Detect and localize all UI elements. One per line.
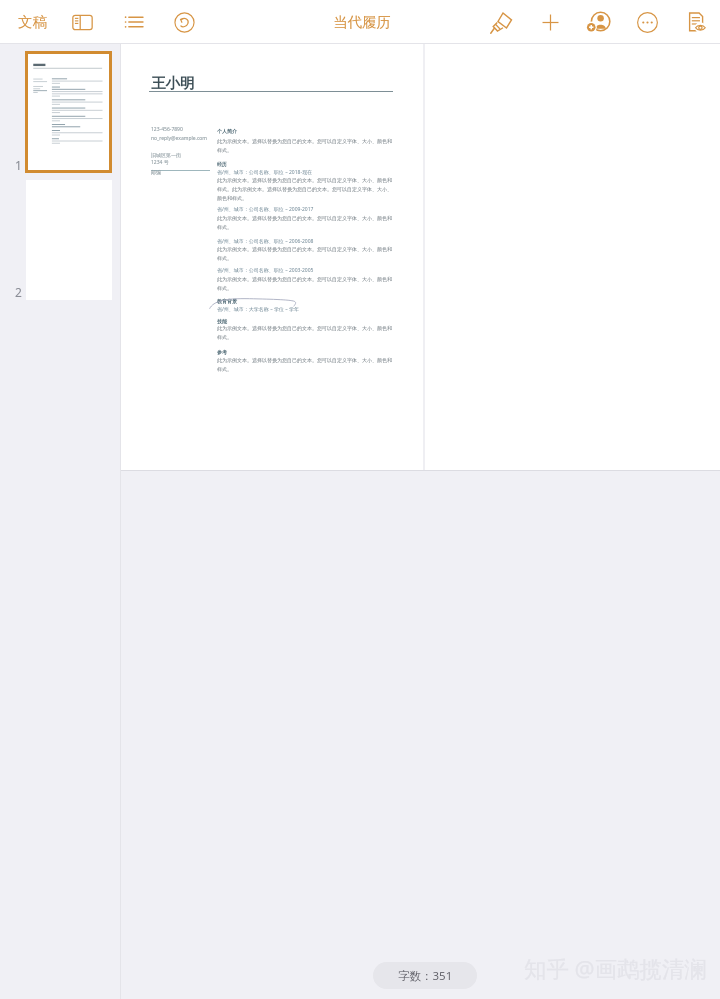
staticText: 1234 号 — [151, 159, 169, 166]
staticText: 字数：351 — [398, 968, 453, 984]
button[interactable]: More — [632, 7, 662, 37]
staticText: 此为示例文本。选择以替换为您自己的文本。您可以自定义字体、大小、颜色和样式。 — [217, 246, 394, 261]
staticText: 王小明 — [151, 74, 195, 92]
staticText: 经历 — [217, 161, 227, 167]
staticText: 此为示例文本。选择以替换为您自己的文本。您可以自定义字体、大小、颜色和样式。 — [217, 276, 394, 291]
staticText: 省/州、城市：公司名称、职位 – 2018-现在 — [217, 169, 313, 176]
button[interactable]: Table of contents — [119, 7, 149, 37]
staticText: 1 — [15, 157, 22, 173]
button[interactable]: 王小明 — [121, 44, 420, 470]
staticText: 当代履历 — [333, 13, 391, 31]
button[interactable]: 文稿 — [12, 6, 53, 38]
button[interactable]: Undo — [169, 7, 199, 37]
staticText: 教育背景 — [217, 298, 237, 304]
button[interactable]: Insert — [535, 7, 565, 37]
button[interactable]: Sidebar — [67, 7, 97, 37]
staticText: 文稿 — [18, 13, 47, 31]
staticText: 个人简介 — [217, 128, 237, 134]
staticText: 省/州、城市：公司名称、职位 – 2009-2017 — [217, 206, 314, 213]
staticText: 邮编 — [151, 169, 161, 175]
staticText: 省/州、城市：公司名称、职位 – 2003-2005 — [217, 267, 314, 274]
button[interactable]: 字数：351 — [373, 962, 477, 989]
button[interactable]: Collaborate — [583, 7, 613, 37]
staticText: no_reply@example.com — [151, 135, 208, 142]
staticText: 此为示例文本。选择以替换为您自己的文本。您可以自定义字体、大小、颜色和样式。此为… — [217, 177, 394, 201]
staticText: 此为示例文本。选择以替换为您自己的文本。您可以自定义字体、大小、颜色和样式。 — [217, 138, 394, 153]
staticText: 旧城区第一街 — [151, 152, 181, 158]
staticText: 123-456-7890 — [151, 126, 183, 133]
staticText: 知乎 @画鹉揽清澜 — [524, 953, 707, 984]
staticText: 此为示例文本。选择以替换为您自己的文本。您可以自定义字体、大小、颜色和样式。 — [217, 325, 394, 340]
button[interactable]: Document options — [681, 7, 711, 37]
staticText: 此为示例文本。选择以替换为您自己的文本。您可以自定义字体、大小、颜色和样式。 — [217, 357, 394, 372]
button[interactable] — [28, 54, 109, 170]
staticText: 参考 — [217, 349, 227, 355]
staticText: 2 — [15, 284, 22, 300]
staticText: 省/州、城市：大学名称 – 学位 – 学年 — [217, 306, 300, 313]
button[interactable]: Format — [486, 7, 516, 37]
staticText: 省/州、城市：公司名称、职位 – 2006-2008 — [217, 238, 314, 245]
staticText: 此为示例文本。选择以替换为您自己的文本。您可以自定义字体、大小、颜色和样式。 — [217, 215, 394, 230]
staticText: 技能 — [217, 318, 227, 324]
